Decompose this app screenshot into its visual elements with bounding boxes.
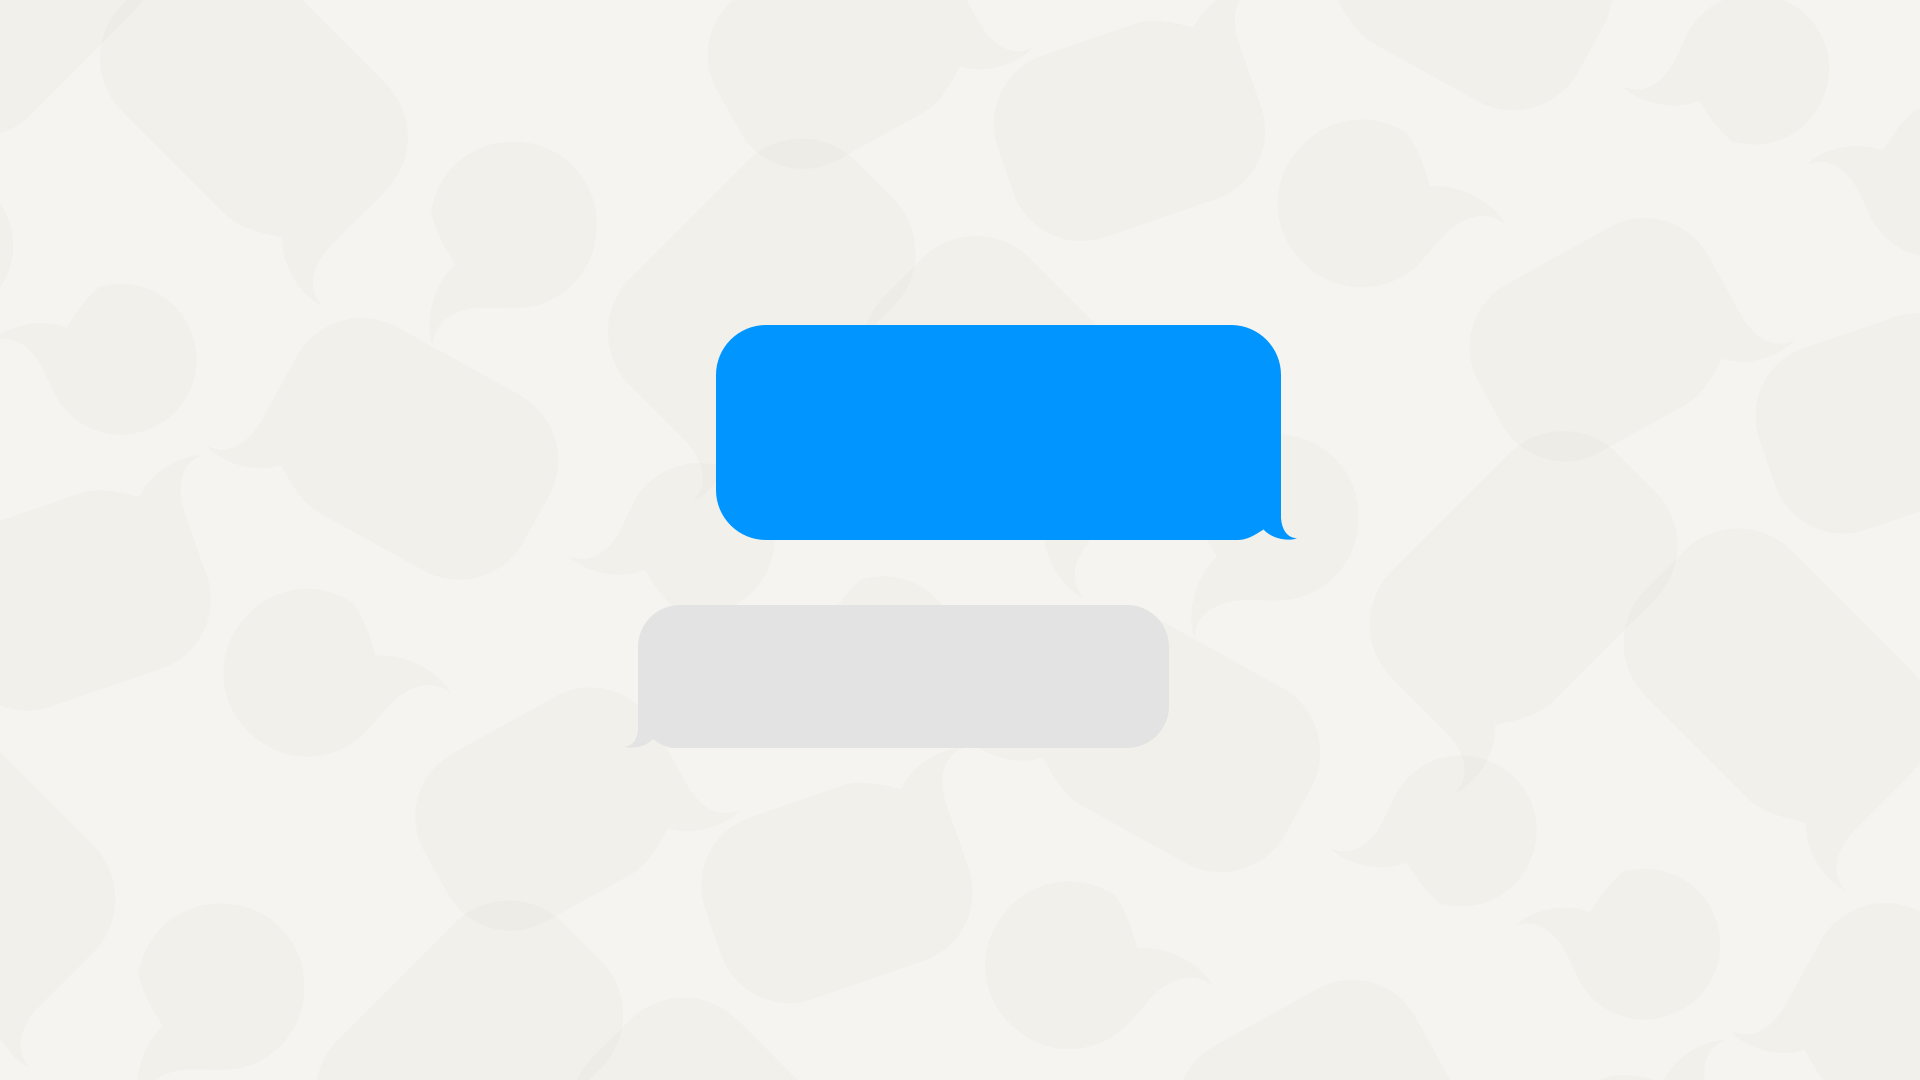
- button[interactable]: Received message: [625, 605, 1169, 748]
- button[interactable]: Sent message: [716, 325, 1297, 540]
